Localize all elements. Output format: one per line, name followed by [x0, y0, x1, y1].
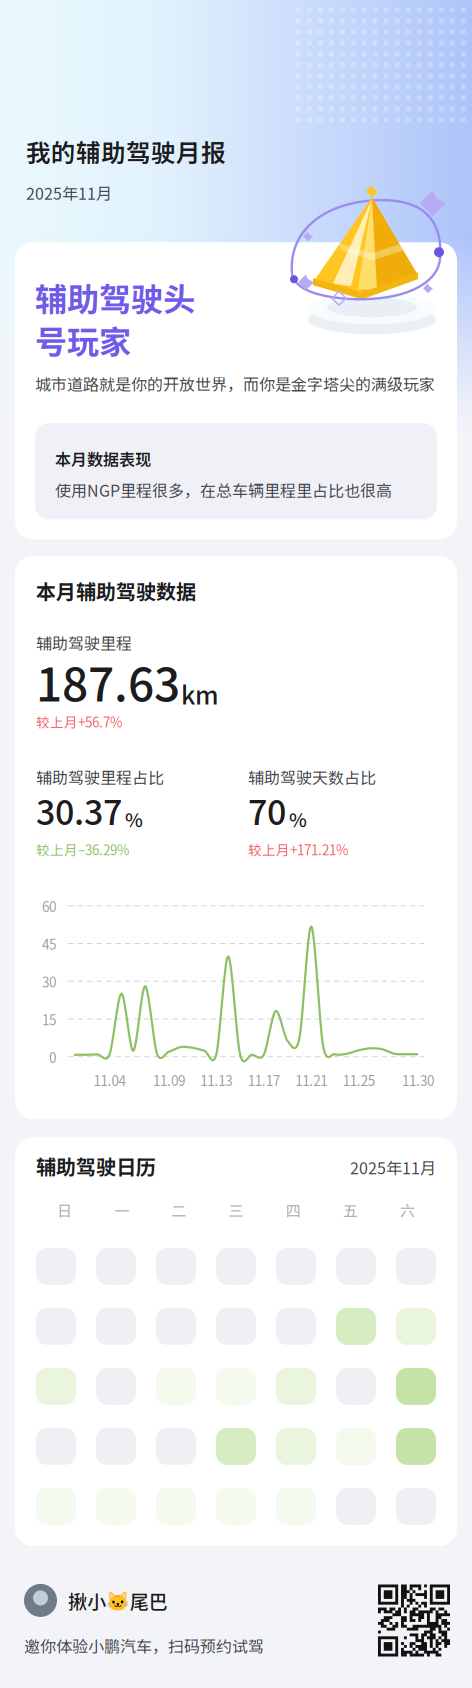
- staticText: %: [289, 805, 307, 833]
- staticText: 号玩家: [35, 317, 131, 363]
- staticText: 邀你体验小鹏汽车，扫码预约试驾: [24, 1634, 264, 1657]
- staticText: 60: [42, 896, 56, 916]
- staticText: 本月辅助驾驶数据: [36, 576, 196, 605]
- staticText: %: [125, 805, 143, 833]
- staticText: 二: [171, 1199, 186, 1221]
- staticText: 11.17: [248, 1070, 280, 1090]
- staticText: 本月数据表现: [55, 447, 151, 470]
- staticText: 辅助驾驶天数占比: [248, 765, 376, 788]
- staticText: 四: [286, 1199, 301, 1221]
- staticText: 15: [42, 1009, 56, 1029]
- staticText: 辅助驾驶日历: [36, 1151, 156, 1180]
- staticText: 辅助驾驶里程: [36, 631, 132, 654]
- staticText: 一: [114, 1199, 129, 1221]
- staticText: 我的辅助驾驶月报: [26, 134, 226, 169]
- staticText: 较上月+56.7%: [36, 712, 122, 731]
- staticText: 11.09: [153, 1070, 185, 1090]
- staticText: 六: [400, 1199, 415, 1221]
- staticText: 70: [248, 785, 286, 835]
- staticText: 揪小🐱尾巴: [68, 1587, 168, 1614]
- staticText: 11.30: [402, 1070, 434, 1090]
- staticText: 使用NGP里程很多，在总车辆里程里占比也很高: [55, 478, 392, 501]
- staticText: 三: [228, 1199, 243, 1221]
- staticText: 11.25: [343, 1070, 375, 1090]
- staticText: 11.21: [295, 1070, 327, 1090]
- staticText: 五: [343, 1199, 358, 1221]
- staticText: 较上月+171.21%: [248, 840, 348, 859]
- staticText: 日: [57, 1199, 72, 1221]
- staticText: 11.13: [200, 1070, 232, 1090]
- staticText: 辅助驾驶里程占比: [36, 765, 164, 788]
- staticText: 187.63: [36, 648, 180, 715]
- staticText: 30.37: [36, 785, 122, 835]
- staticText: 辅助驾驶头: [35, 274, 195, 320]
- staticText: 30: [42, 972, 56, 991]
- staticText: 0: [49, 1047, 56, 1067]
- staticText: 城市道路就是你的开放世界，而你是金字塔尖的满级玩家: [35, 372, 435, 395]
- staticText: 较上月–36.29%: [36, 840, 129, 859]
- staticText: km: [181, 675, 219, 712]
- staticText: 2025年11月: [350, 1156, 436, 1179]
- staticText: 2025年11月: [26, 181, 112, 204]
- staticText: 11.04: [94, 1070, 126, 1090]
- staticText: 45: [42, 934, 56, 953]
